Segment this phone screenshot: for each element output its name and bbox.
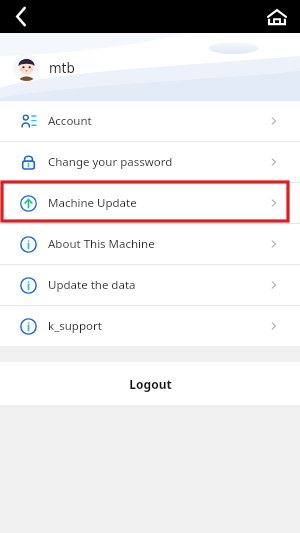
- staticText: About This Machine: [48, 236, 155, 252]
- staticText: Update the data: [48, 277, 136, 293]
- button[interactable]: Back: [4, 0, 38, 33]
- staticText: Machine Update: [48, 195, 137, 211]
- button[interactable]: Logout: [0, 362, 300, 405]
- button[interactable]: About This Machine: [0, 224, 300, 264]
- staticText: k_support: [48, 318, 102, 334]
- staticText: Account: [48, 113, 92, 129]
- staticText: Change your password: [48, 154, 173, 170]
- button[interactable]: Account: [0, 101, 300, 141]
- button[interactable]: Machine Update: [0, 183, 300, 223]
- staticText: mtb: [49, 59, 75, 77]
- button[interactable]: k_support: [0, 306, 300, 346]
- button[interactable]: Change your password: [0, 142, 300, 182]
- button[interactable]: Update the data: [0, 265, 300, 305]
- staticText: Logout: [129, 376, 172, 392]
- button[interactable]: Home: [262, 2, 292, 32]
